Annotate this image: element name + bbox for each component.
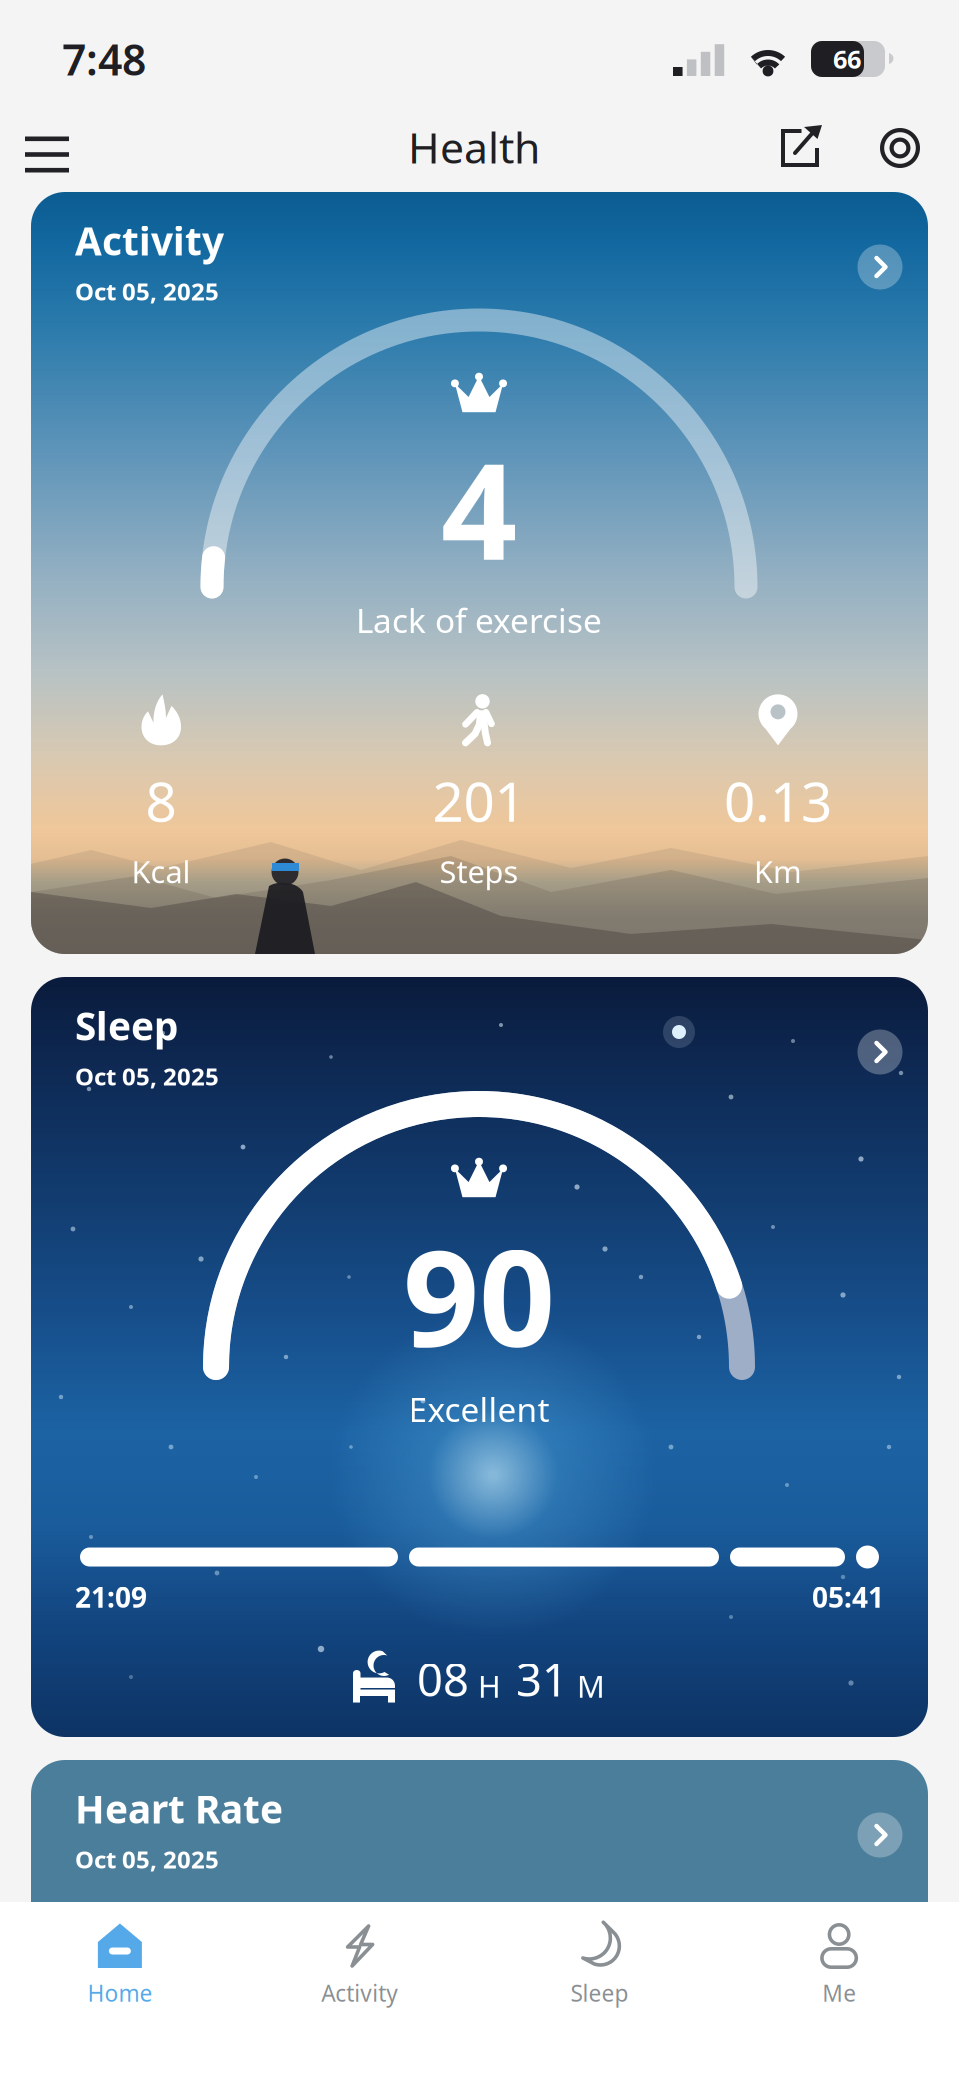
staticText: Activity	[75, 215, 224, 266]
button[interactable]: Settings	[876, 125, 924, 171]
staticText: Home	[87, 1978, 152, 2008]
button[interactable]: Sleep details	[857, 1029, 902, 1074]
staticText: Kcal	[131, 851, 190, 892]
staticText: Km	[754, 851, 802, 892]
staticText: Oct 05, 2025	[75, 275, 219, 307]
staticText: 21:09	[75, 1578, 147, 1616]
staticText: H	[478, 1665, 501, 1706]
staticText: 8	[145, 764, 176, 837]
staticText: Oct 05, 2025	[75, 1060, 219, 1092]
staticText: 05:41	[812, 1578, 884, 1616]
staticText: Lack of exercise	[356, 598, 602, 642]
staticText: 31	[516, 1649, 568, 1709]
staticText: 4	[441, 419, 517, 597]
button[interactable]: Sleep	[479, 1919, 719, 2012]
button[interactable]: Menu	[24, 127, 70, 167]
staticText: 90	[403, 1206, 555, 1384]
button[interactable]: Activity	[240, 1919, 480, 2012]
staticText: 66	[833, 42, 861, 76]
button[interactable]: Activity details	[857, 244, 902, 289]
staticText: Sleep	[75, 1000, 178, 1051]
button[interactable]: Me	[719, 1919, 959, 2012]
staticText: Sleep	[570, 1978, 628, 2008]
staticText: Steps	[439, 851, 518, 892]
staticText: Activity	[321, 1978, 398, 2008]
staticText: 0.13	[724, 764, 832, 837]
button[interactable]: Home	[0, 1919, 240, 2012]
button[interactable]: Heart rate details	[857, 1812, 902, 1857]
staticText: Me	[822, 1978, 856, 2008]
staticText: M	[577, 1665, 605, 1706]
staticText: Excellent	[408, 1387, 549, 1431]
staticText: Heart Rate	[75, 1783, 283, 1834]
staticText: 7:48	[62, 31, 146, 87]
staticText: 08	[417, 1649, 469, 1709]
staticText: Health	[408, 119, 540, 175]
button[interactable]: Share	[780, 124, 828, 170]
staticText: Oct 05, 2025	[75, 1843, 219, 1875]
staticText: 201	[432, 764, 525, 837]
